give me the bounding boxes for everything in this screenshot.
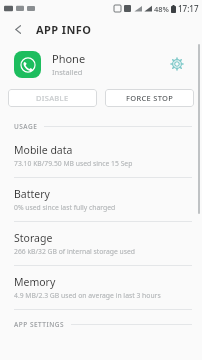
button[interactable]: Battery [0, 178, 202, 221]
staticText: FORCE STOP [126, 93, 174, 103]
staticText: 48% [154, 4, 169, 14]
button[interactable]: Memory [0, 266, 202, 309]
staticText: Storage [14, 231, 53, 245]
staticText: 0% used since last fully charged [14, 203, 116, 212]
staticText: DISABLE [36, 93, 69, 103]
staticText: APP INFO [36, 22, 92, 37]
staticText: 17:17 [178, 3, 199, 14]
staticText: 73.10 KB/79.50 MB used since 15 Sep [14, 159, 133, 168]
staticText: 266 kB/32 GB of internal storage used [14, 247, 136, 256]
button[interactable]: App settings [166, 53, 188, 75]
button[interactable]: FORCE STOP [105, 89, 194, 107]
staticText: APP SETTINGS [14, 320, 65, 329]
staticText: USAGE [14, 122, 38, 131]
staticText: Mobile data [14, 143, 73, 157]
button[interactable]: Mobile data [0, 134, 202, 177]
button[interactable]: Back [8, 19, 28, 39]
button[interactable]: DISABLE [8, 89, 97, 107]
staticText: 4.9 MB/2.3 GB used on average in last 3 … [14, 291, 161, 300]
staticText: Memory [14, 275, 56, 289]
button[interactable]: Storage [0, 222, 202, 265]
staticText: Phone [52, 51, 86, 66]
staticText: Installed [52, 67, 83, 77]
staticText: Battery [14, 187, 50, 201]
button[interactable]: Phone [0, 42, 202, 86]
